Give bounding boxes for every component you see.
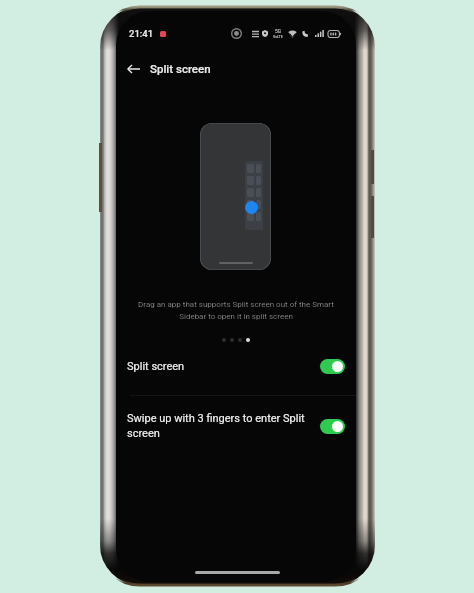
staticText: Drag an app that supports Split screen o… [130,300,342,321]
staticText: Split screen [150,62,211,75]
staticText: 5G [275,29,281,35]
staticText: 21:41 [129,28,154,39]
button[interactable]: Split screen [116,346,356,386]
staticText: Split screen [127,360,319,373]
staticText: Swipe up with 3 fingers to enter Split s… [127,412,319,440]
staticText: VoLTE [273,35,283,39]
button[interactable]: Back [118,54,148,84]
button[interactable]: Swipe up with 3 fingers to enter Split s… [116,401,356,451]
